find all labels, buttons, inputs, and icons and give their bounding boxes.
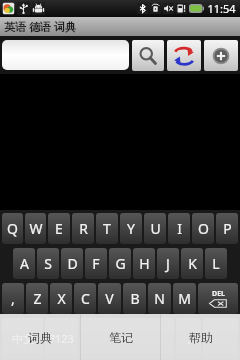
staticText: M [178,289,191,308]
staticText: Z [33,289,42,308]
button[interactable]: O [192,213,214,244]
button[interactable]: A [13,248,35,279]
button[interactable]: M [173,283,196,314]
staticText: F [92,254,100,273]
staticText: K [188,254,197,273]
staticText: H [139,254,150,273]
button[interactable]: Swap languages [167,40,201,71]
staticText: , [11,289,15,308]
button[interactable] [80,318,174,359]
staticText: D [67,254,78,273]
button[interactable]: , [2,283,24,314]
button[interactable]: Q [2,213,23,244]
button[interactable]: 中文 [2,318,43,359]
button[interactable] [2,40,129,70]
button[interactable]: X [50,283,72,314]
staticText: O [198,219,209,238]
button[interactable]: I [168,213,190,244]
staticText: B [130,289,140,308]
staticText: Q [7,219,18,238]
staticText: C [81,289,90,308]
staticText: Y [127,219,135,238]
button[interactable]: S [37,248,59,279]
staticText: L [212,254,220,273]
button[interactable]: 帮助 [161,314,240,360]
button[interactable]: N [148,283,171,314]
staticText: . [187,329,191,348]
staticText: 笔记 [109,330,133,345]
button[interactable]: C [74,283,96,314]
button[interactable]: B [123,283,146,314]
staticText: 词典 [28,330,52,345]
staticText: J [166,254,170,273]
staticText: W [29,219,43,238]
button[interactable]: K [181,248,203,279]
button[interactable]: H [133,248,155,279]
button[interactable]: 词典 [0,314,80,360]
button[interactable]: 笔记 [81,314,160,360]
staticText: 中文 [12,332,34,346]
button[interactable]: Z [26,283,48,314]
staticText: 英语 德语 词典 [4,19,76,34]
button[interactable]: J [157,248,179,279]
button[interactable]: W [25,213,46,244]
staticText: 11:54 [207,1,236,16]
staticText: 帮助 [189,330,213,345]
staticText: S [44,254,52,273]
staticText: N [154,289,165,308]
staticText: ?123 [50,331,74,346]
button[interactable]: F [85,248,107,279]
button[interactable]: . [176,318,201,359]
staticText: P [223,219,232,238]
button[interactable]: G [109,248,131,279]
staticText: T [103,219,111,238]
button[interactable]: L [205,248,227,279]
staticText: G [115,254,126,273]
button[interactable]: T [96,213,118,244]
button[interactable]: V [98,283,121,314]
staticText: A [20,254,29,273]
staticText: U [150,219,161,238]
button[interactable]: E [48,213,70,244]
button[interactable]: U [144,213,166,244]
staticText: I [177,219,182,238]
staticText: X [57,289,66,308]
button[interactable]: Add word [204,40,238,71]
button[interactable]: P [216,213,238,244]
button[interactable]: Search [132,40,164,71]
button[interactable]: D [61,248,83,279]
button[interactable] [203,318,238,359]
staticText: V [105,289,114,308]
staticText: DEL [212,289,225,299]
staticText: E [55,219,63,238]
staticText: R [79,219,88,238]
button[interactable]: Delete [198,283,238,314]
button[interactable]: ?123 [45,318,78,359]
button[interactable]: R [72,213,94,244]
button[interactable]: Y [120,213,142,244]
